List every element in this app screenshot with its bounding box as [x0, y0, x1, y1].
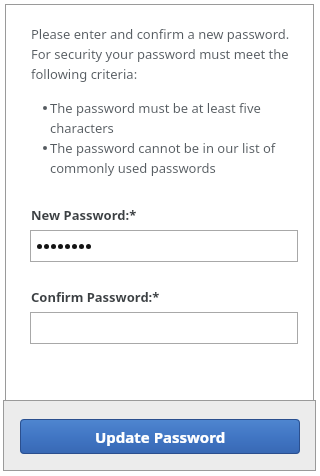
staticText: The password must be at least five [50, 99, 261, 117]
staticText: characters [50, 119, 114, 137]
staticText: For security your password must meet the [31, 45, 289, 63]
staticText: Confirm Password:* [31, 288, 160, 304]
button[interactable]: Password input [30, 312, 298, 344]
button[interactable]: Password input [30, 230, 298, 262]
staticText: following criteria: [31, 65, 138, 83]
staticText: commonly used passwords [50, 159, 216, 177]
staticText: Update Password [95, 427, 226, 447]
staticText: New Password:* [31, 206, 137, 222]
button[interactable]: Update Password [20, 419, 300, 454]
staticText: The password cannot be in our list of [50, 139, 276, 157]
staticText: Please enter and confirm a new password. [31, 25, 290, 43]
